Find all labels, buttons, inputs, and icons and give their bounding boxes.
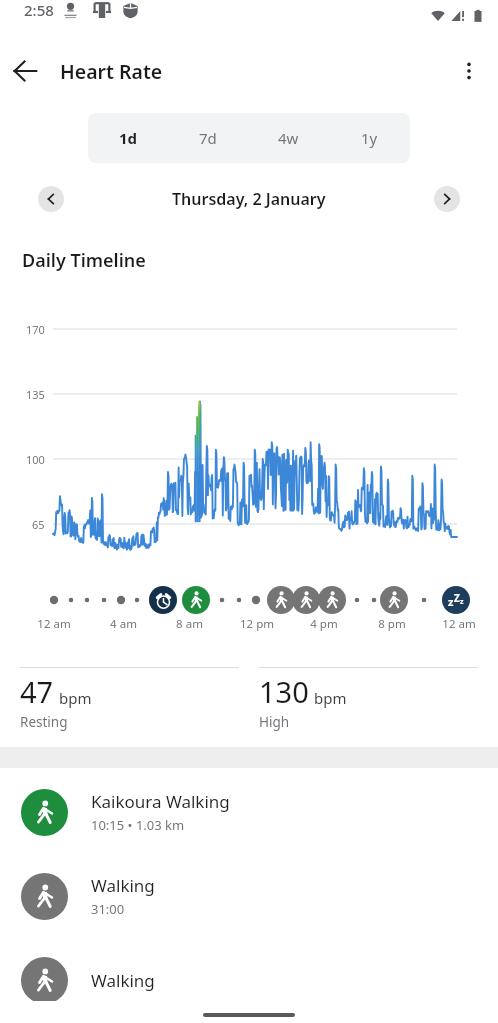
staticText: Kaikoura Walking <box>91 790 230 813</box>
button[interactable]: WALK <box>267 586 295 614</box>
staticText: z <box>448 594 454 609</box>
staticText: 130 <box>259 672 309 711</box>
button[interactable]: Next day <box>434 186 460 212</box>
button[interactable]: 7d <box>168 113 248 163</box>
staticText: 8 pm <box>378 616 406 632</box>
staticText: Walking <box>91 874 155 897</box>
staticText: 31:00 <box>91 900 125 918</box>
button[interactable]: Back <box>3 49 47 93</box>
button[interactable]: SLEEP <box>442 586 470 614</box>
staticText: bpm <box>314 688 347 708</box>
button[interactable]: Walking <box>0 854 498 938</box>
staticText: 12 am <box>442 616 476 632</box>
staticText: 10:15 • 1.03 km <box>91 816 185 834</box>
staticText: z <box>460 597 464 607</box>
staticText: 1d <box>119 128 138 148</box>
staticText: 65 <box>32 517 45 532</box>
button[interactable]: WALK <box>380 586 408 614</box>
button[interactable]: WALK <box>292 586 320 614</box>
staticText: 12 pm <box>240 616 274 632</box>
staticText: 4w <box>278 128 299 148</box>
staticText: 12 am <box>37 616 71 632</box>
staticText: 4 am <box>110 616 137 632</box>
staticText: 4 pm <box>310 616 338 632</box>
staticText: 170 <box>26 322 45 337</box>
staticText: 47 <box>20 672 54 711</box>
button[interactable]: More options <box>447 49 491 93</box>
button[interactable]: 4w <box>248 113 329 163</box>
staticText: Walking <box>91 969 155 992</box>
staticText: Heart Rate <box>60 58 163 85</box>
staticText: bpm <box>59 688 92 708</box>
staticText: 1y <box>361 128 378 148</box>
button[interactable]: 1d <box>88 113 168 163</box>
staticText: 8 am <box>176 616 203 632</box>
staticText: Thursday, 2 January <box>172 188 326 210</box>
button[interactable]: 1y <box>329 113 410 163</box>
staticText: High <box>259 713 290 731</box>
staticText: Resting <box>20 713 68 731</box>
button[interactable]: WALK <box>182 586 210 614</box>
staticText: Daily Timeline <box>22 248 146 273</box>
button[interactable]: Kaikoura Walking <box>0 770 498 854</box>
staticText: Z <box>454 591 460 605</box>
staticText: 135 <box>26 387 45 402</box>
button[interactable]: Walking <box>0 938 498 1022</box>
button[interactable]: Previous day <box>38 186 64 212</box>
staticText: 100 <box>26 452 45 467</box>
staticText: 2:58 <box>24 0 54 20</box>
button[interactable]: WALK <box>318 586 346 614</box>
staticText: 7d <box>199 128 217 148</box>
button[interactable]: ALARM <box>149 586 177 614</box>
